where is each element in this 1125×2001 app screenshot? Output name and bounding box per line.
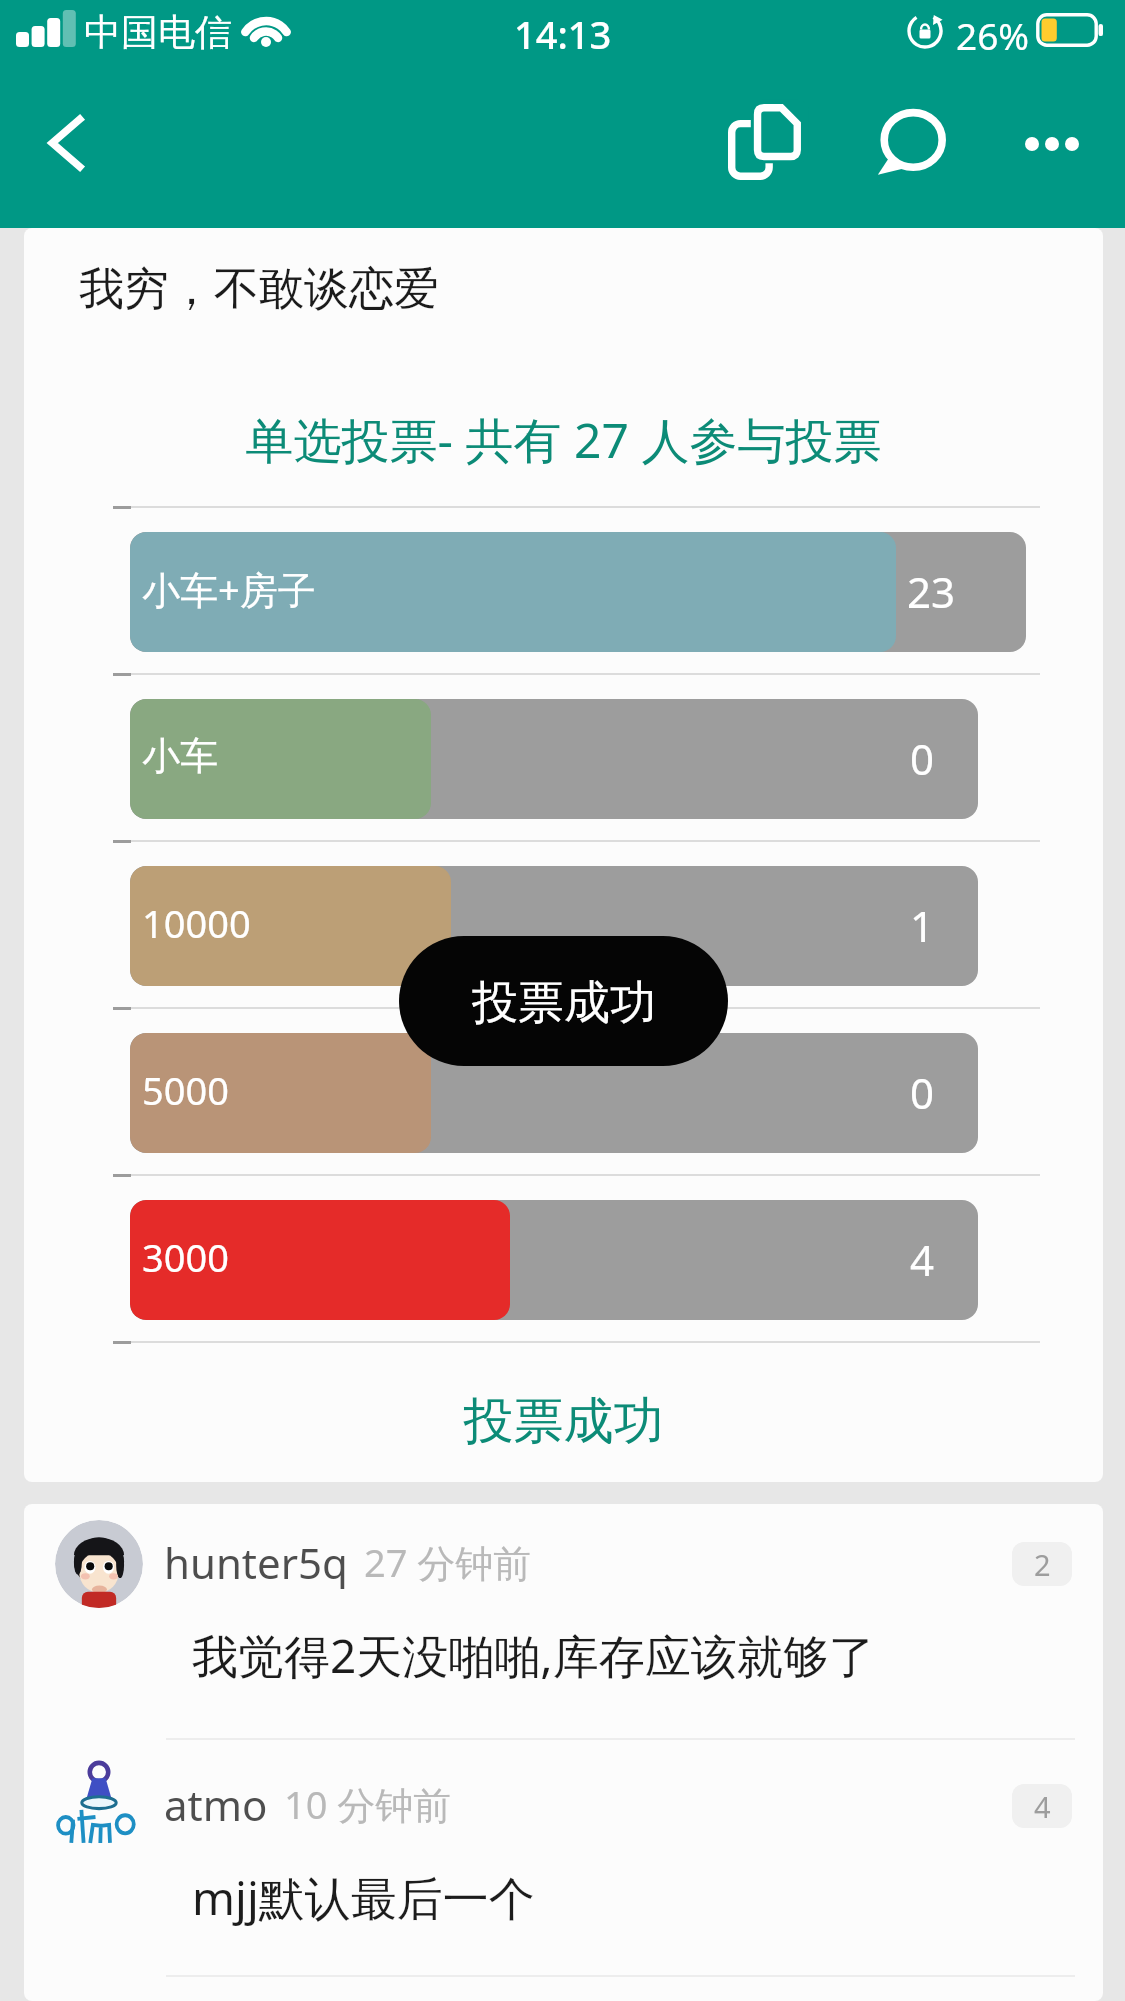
staticText: 我穷，不敢谈恋爱 xyxy=(79,261,439,318)
staticText: 1 xyxy=(910,897,935,954)
staticText: 小车 xyxy=(142,732,218,780)
staticText: 中国电信 xyxy=(84,9,232,56)
staticText: 4 xyxy=(910,1231,935,1288)
button[interactable]: 5000 xyxy=(130,1033,978,1153)
staticText: 我觉得2天没啪啪,库存应该就够了 xyxy=(192,1624,875,1687)
staticText: 23 xyxy=(907,563,956,620)
staticText: hunter5q xyxy=(164,1534,348,1591)
staticText: atmo xyxy=(164,1776,268,1833)
staticText: 5000 xyxy=(142,1064,229,1116)
button[interactable]: Comments xyxy=(854,87,964,197)
staticText: 10 分钟前 xyxy=(284,1778,452,1830)
staticText: 14:13 xyxy=(514,8,612,60)
staticText: 0 xyxy=(910,1064,935,1121)
button[interactable]: hunter5q xyxy=(24,1504,1103,1733)
button[interactable]: Copy xyxy=(711,87,821,197)
staticText: 0 xyxy=(910,730,935,787)
staticText: 3000 xyxy=(142,1231,229,1283)
staticText: 小车+房子 xyxy=(142,563,316,615)
staticText: 26% xyxy=(956,10,1030,60)
button[interactable]: Back xyxy=(24,109,106,191)
staticText: mjj默认最后一个 xyxy=(192,1866,535,1929)
button[interactable]: More options xyxy=(1000,94,1104,194)
button[interactable]: 10000 xyxy=(130,866,978,986)
button[interactable]: 3000 xyxy=(130,1200,978,1320)
button[interactable]: 小车+房子 xyxy=(130,532,1026,652)
staticText: 4 xyxy=(1034,1787,1051,1826)
button[interactable]: 投票成功 xyxy=(24,1390,1103,1453)
staticText: 2 xyxy=(1034,1545,1051,1584)
staticText: 单选投票- 共有 27 人参与投票 xyxy=(24,407,1103,473)
staticText: 27 分钟前 xyxy=(364,1536,532,1588)
staticText: 投票成功 xyxy=(472,974,656,1032)
button[interactable]: 小车 xyxy=(130,699,978,819)
button[interactable]: atmo xyxy=(24,1746,1103,1975)
staticText: 10000 xyxy=(142,897,251,949)
